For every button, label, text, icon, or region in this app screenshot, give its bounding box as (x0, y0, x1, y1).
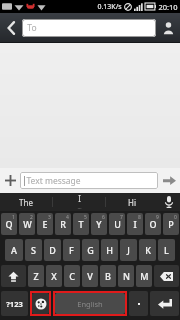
button[interactable]: 2 (19, 213, 35, 235)
button[interactable]: To (22, 19, 156, 37)
button[interactable]: C (64, 265, 80, 287)
staticText: S (31, 244, 36, 256)
button[interactable]: N (118, 265, 134, 287)
staticText: 5 (84, 214, 87, 221)
staticText: F (69, 244, 74, 256)
staticText: Text message (26, 175, 81, 187)
staticText: 4 (66, 214, 69, 221)
staticText: V (87, 270, 93, 282)
button[interactable]: 8 (127, 213, 143, 235)
button[interactable]: V (82, 265, 98, 287)
button[interactable]: English (55, 293, 125, 314)
staticText: 1 (12, 214, 15, 221)
button[interactable]: Add contact (156, 13, 180, 43)
button[interactable]: I (53, 193, 105, 211)
staticText: 0 (174, 214, 177, 221)
staticText: I (78, 193, 81, 204)
button[interactable]: Back (0, 13, 22, 43)
button[interactable] (129, 291, 148, 316)
staticText: 20:10 (158, 2, 178, 12)
staticText: G (87, 244, 94, 256)
button[interactable]: Change language (32, 293, 49, 314)
staticText: 3 (48, 214, 51, 221)
button[interactable]: F (63, 239, 80, 261)
staticText: English (77, 299, 103, 309)
button[interactable]: Backspace (154, 265, 179, 287)
button[interactable]: A (5, 239, 23, 261)
staticText: Q (5, 218, 13, 230)
button[interactable]: Z (28, 265, 44, 287)
button[interactable]: S (25, 239, 42, 261)
button[interactable]: Voice input (158, 193, 180, 211)
button[interactable]: D (44, 239, 61, 261)
button[interactable]: Hi (106, 193, 158, 211)
staticText: O (149, 218, 157, 230)
staticText: W (23, 218, 32, 230)
staticText: To (27, 22, 37, 34)
staticText: I (133, 218, 137, 230)
staticText: Y (96, 218, 102, 230)
button[interactable]: J (120, 239, 137, 261)
button[interactable]: 3 (37, 213, 53, 235)
staticText: ... (77, 204, 82, 211)
staticText: B (105, 270, 111, 282)
staticText: X (51, 270, 57, 282)
staticText: M (140, 270, 149, 282)
button[interactable]: Enter (150, 291, 179, 316)
button[interactable]: 9 (145, 213, 161, 235)
button[interactable]: Send (158, 168, 180, 193)
staticText: ?123 (6, 299, 23, 309)
button[interactable]: 6 (91, 213, 107, 235)
staticText: H (106, 244, 113, 256)
staticText: 6 (102, 214, 105, 221)
button[interactable]: Attach (0, 168, 20, 193)
staticText: K (145, 244, 151, 256)
staticText: Hi (128, 197, 136, 208)
staticText: R (60, 218, 66, 230)
staticText: 7 (120, 214, 123, 221)
button[interactable]: Shift (1, 265, 26, 287)
button[interactable]: 7 (109, 213, 125, 235)
staticText: The (19, 197, 33, 208)
button[interactable]: 1 (1, 213, 17, 235)
staticText: U (114, 218, 121, 230)
button[interactable]: B (100, 265, 116, 287)
staticText: J (127, 244, 130, 256)
staticText: N (123, 270, 130, 282)
button[interactable]: H (101, 239, 118, 261)
staticText: P (168, 218, 174, 230)
staticText: Z (33, 270, 39, 282)
staticText: L (164, 244, 169, 256)
button[interactable]: ?123 (1, 291, 28, 316)
staticText: 2 (30, 214, 33, 221)
button[interactable]: Text message (20, 172, 158, 189)
button[interactable]: X (46, 265, 62, 287)
button[interactable]: L (158, 239, 175, 261)
staticText: 9 (156, 214, 159, 221)
staticText: E (42, 218, 48, 230)
button[interactable]: The (0, 193, 52, 211)
button[interactable]: 0 (163, 213, 179, 235)
staticText: D (49, 244, 56, 256)
button[interactable]: 5 (73, 213, 89, 235)
staticText: C (69, 270, 75, 282)
button[interactable]: G (82, 239, 99, 261)
staticText: T (78, 218, 84, 230)
staticText: 8 (138, 214, 141, 221)
staticText: A (11, 244, 17, 256)
button[interactable]: 4 (55, 213, 71, 235)
button[interactable]: K (139, 239, 156, 261)
staticText: 0.13K/s (97, 2, 122, 12)
button[interactable]: M (136, 265, 152, 287)
